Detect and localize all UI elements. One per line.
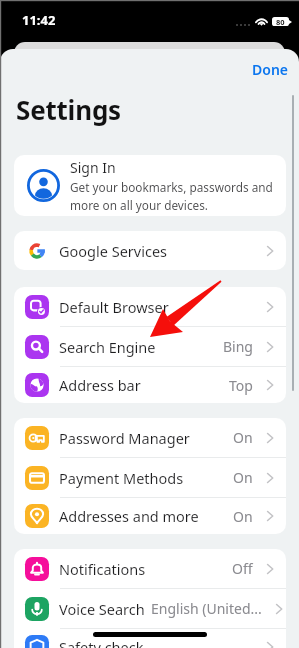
button[interactable]: Search Engine bbox=[14, 327, 286, 366]
staticText: more on all your devices. bbox=[70, 197, 209, 213]
staticText: English (United... bbox=[151, 599, 262, 618]
button[interactable]: Google Services bbox=[14, 231, 286, 270]
staticText: On bbox=[233, 468, 253, 487]
button[interactable]: Password Manager bbox=[14, 418, 286, 457]
staticText: Get your bookmarks, passwords and bbox=[70, 179, 273, 195]
button[interactable]: Default Browser bbox=[14, 287, 286, 326]
staticText: Settings bbox=[16, 92, 121, 127]
staticText: Default Browser bbox=[59, 297, 169, 317]
staticText: On bbox=[233, 428, 253, 447]
button[interactable]: Address bar bbox=[14, 367, 286, 403]
staticText: Address bar bbox=[59, 375, 141, 395]
staticText: Password Manager bbox=[59, 428, 190, 448]
staticText: Safety check bbox=[59, 637, 144, 648]
staticText: Addresses and more bbox=[59, 506, 199, 526]
staticText: 11:42 bbox=[22, 11, 56, 29]
staticText: 80 bbox=[276, 17, 285, 26]
button[interactable]: Addresses and more bbox=[14, 498, 286, 534]
staticText: Google Services bbox=[59, 241, 168, 261]
staticText: Top bbox=[229, 376, 253, 395]
button[interactable]: Done bbox=[252, 56, 289, 82]
staticText: Sign In bbox=[70, 158, 116, 177]
button[interactable]: Sign In bbox=[14, 155, 286, 216]
button[interactable]: Safety check bbox=[14, 629, 286, 648]
button[interactable]: Payment Methods bbox=[14, 458, 286, 497]
button[interactable]: Notifications bbox=[14, 549, 286, 588]
staticText: Done bbox=[252, 60, 289, 79]
staticText: Bing bbox=[223, 337, 253, 356]
staticText: Payment Methods bbox=[59, 468, 184, 488]
staticText: Search Engine bbox=[59, 337, 156, 357]
staticText: Voice Search bbox=[59, 599, 145, 619]
staticText: Off bbox=[232, 559, 253, 578]
staticText: Notifications bbox=[59, 559, 146, 579]
staticText: On bbox=[233, 507, 253, 526]
button[interactable]: Voice Search bbox=[14, 589, 286, 628]
